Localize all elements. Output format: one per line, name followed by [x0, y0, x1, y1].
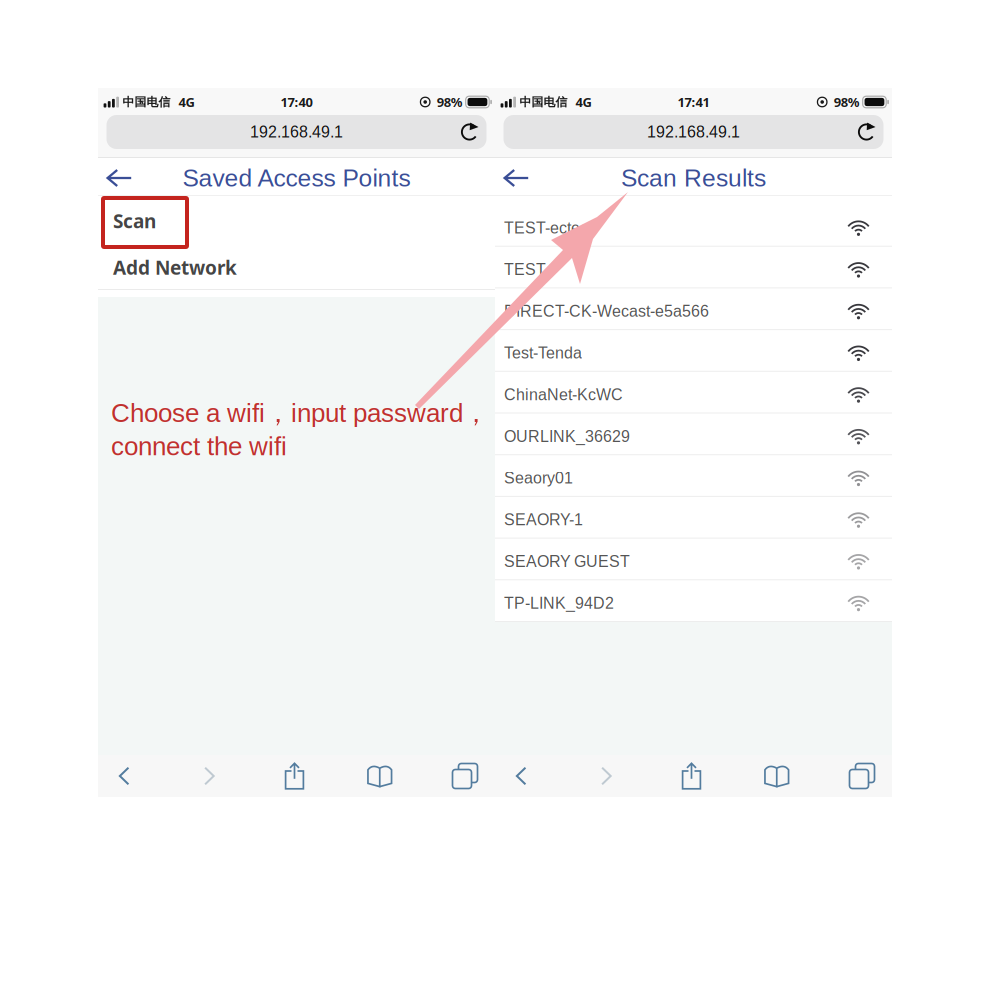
staticText: 192.168.49.1	[647, 123, 740, 141]
staticText: SEAORY-1	[504, 511, 583, 529]
button[interactable]: Back	[99, 163, 139, 193]
button[interactable]: Back	[496, 163, 536, 193]
staticText: 中国电信	[520, 95, 568, 109]
button[interactable]: Back	[495, 756, 547, 796]
button[interactable]: Share	[268, 756, 320, 796]
staticText: SEAORY GUEST	[504, 552, 630, 570]
button[interactable]: DIRECT-CK-Wecast-e5a566	[495, 288, 892, 330]
staticText: Scan Results	[621, 164, 766, 192]
button[interactable]: OURLINK_36629	[495, 413, 892, 455]
staticText: Seaory01	[504, 469, 573, 487]
button[interactable]: Share	[665, 756, 717, 796]
button[interactable]: Tabs	[439, 756, 491, 796]
button[interactable]: TEST-ectech	[495, 205, 892, 247]
button[interactable]: ChinaNet-KcWC	[495, 372, 892, 413]
staticText: Test-Tenda	[504, 344, 582, 362]
button[interactable]: Add Network	[98, 246, 495, 289]
button[interactable]: SEAORY GUEST	[495, 539, 892, 580]
button[interactable]: Back	[98, 756, 150, 796]
staticText: 4G	[576, 93, 592, 111]
staticText: Scan	[113, 208, 156, 234]
staticText: 中国电信	[123, 95, 171, 109]
staticText: OURLINK_36629	[504, 427, 630, 445]
button[interactable]: Test-Tenda	[495, 330, 892, 372]
button[interactable]: Forward	[580, 756, 632, 796]
staticText: 98%	[437, 93, 463, 111]
button[interactable]: SEAORY-1	[495, 497, 892, 539]
button[interactable]: Tabs	[836, 756, 888, 796]
button[interactable]: Forward	[183, 756, 235, 796]
button[interactable]: TEST	[495, 247, 892, 288]
staticText: Choose a wifi，input passward，	[111, 397, 489, 430]
staticText: TP-LINK_94D2	[504, 594, 614, 612]
staticText: 17:40	[280, 93, 312, 111]
button[interactable]: Reload	[850, 116, 882, 148]
button[interactable]: TP-LINK_94D2	[495, 580, 892, 622]
button[interactable]: Scan	[98, 196, 495, 246]
button[interactable]: Bookmarks	[354, 756, 406, 796]
staticText: ChinaNet-KcWC	[504, 386, 623, 404]
staticText: Add Network	[113, 255, 237, 280]
staticText: TEST	[504, 261, 546, 278]
staticText: 98%	[834, 93, 860, 111]
button[interactable]: Seaory01	[495, 455, 892, 497]
button[interactable]: Bookmarks	[751, 756, 803, 796]
staticText: 17:41	[677, 93, 709, 111]
staticText: 192.168.49.1	[250, 123, 343, 141]
staticText: 4G	[179, 93, 195, 111]
staticText: TEST-ectech	[504, 219, 597, 237]
staticText: Saved Access Points	[182, 164, 410, 192]
staticText: DIRECT-CK-Wecast-e5a566	[504, 302, 709, 320]
staticText: connect the wifi	[111, 432, 287, 461]
button[interactable]: Reload	[453, 116, 485, 148]
